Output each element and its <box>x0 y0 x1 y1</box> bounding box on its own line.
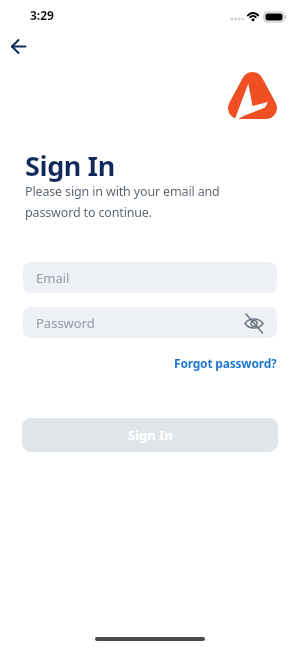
staticText: Sign In <box>128 426 173 444</box>
staticText: 3:29 <box>30 7 54 23</box>
button[interactable]: Password <box>23 307 277 338</box>
staticText: Email <box>36 269 70 287</box>
staticText: Sign In <box>25 147 115 184</box>
button[interactable]: Forgot password? <box>174 355 277 371</box>
button[interactable] <box>5 33 33 61</box>
staticText: Please sign in with your email and passw… <box>25 183 220 220</box>
button[interactable]: Email <box>23 262 277 293</box>
button[interactable]: Sign In <box>22 418 278 452</box>
staticText: Password <box>36 314 95 332</box>
